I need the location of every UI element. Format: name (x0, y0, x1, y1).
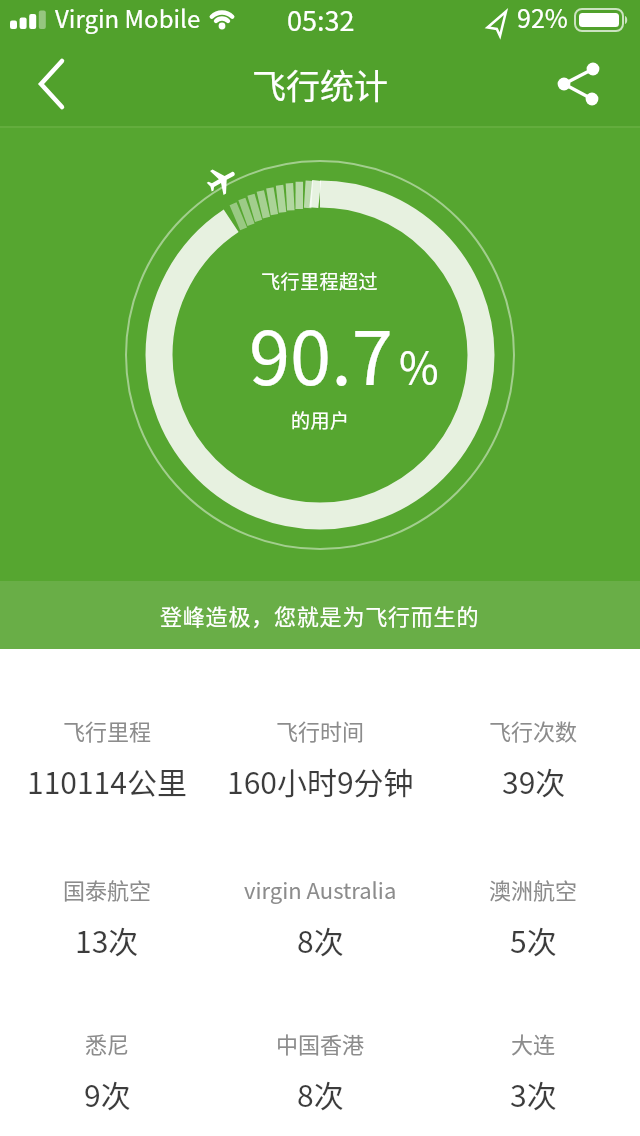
staticText: 飞行里程 (63, 714, 152, 746)
staticText: % (399, 334, 439, 396)
staticText: 飞行时间 (276, 714, 365, 746)
staticText: 90.7 (249, 299, 393, 406)
staticText: 大连 (511, 1027, 556, 1059)
staticText: 飞行统计 (252, 60, 388, 109)
staticText: 5次 (510, 918, 557, 961)
staticText: 05:32 (287, 0, 355, 39)
staticText: 中国香港 (276, 1027, 365, 1059)
staticText: 飞行里程超过 (261, 267, 379, 295)
staticText: 悉尼 (85, 1027, 130, 1059)
staticText: 9次 (84, 1072, 131, 1115)
staticText: 8次 (297, 1072, 344, 1115)
staticText: virgin Australia (244, 873, 397, 905)
staticText: 的用户 (291, 406, 350, 434)
staticText: 92% (517, 0, 568, 35)
button[interactable] (0, 42, 90, 126)
button[interactable] (550, 42, 640, 126)
staticText: Virgin Mobile (55, 0, 201, 35)
staticText: 13次 (75, 918, 139, 961)
staticText: 登峰造极，您就是为飞行而生的 (160, 599, 480, 631)
staticText: 110114公里 (27, 759, 187, 802)
staticText: 39次 (502, 759, 566, 802)
staticText: 国泰航空 (63, 873, 152, 905)
staticText: 160小时9分钟 (227, 759, 414, 802)
staticText: 澳洲航空 (489, 873, 578, 905)
staticText: 飞行次数 (489, 714, 578, 746)
staticText: 8次 (297, 918, 344, 961)
staticText: 3次 (510, 1072, 557, 1115)
